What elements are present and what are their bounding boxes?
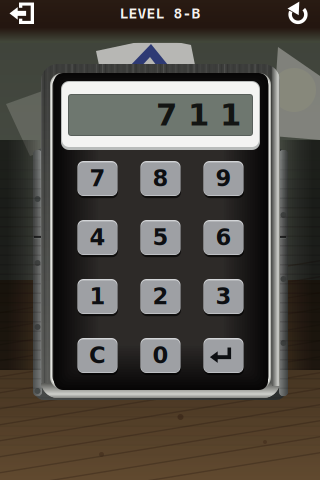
button[interactable]: 8 (140, 161, 180, 198)
button[interactable]: 9 (203, 161, 243, 198)
button[interactable]: 3 (203, 279, 243, 316)
button[interactable]: 5 (140, 220, 180, 257)
staticText: 2 (152, 283, 168, 310)
staticText: 6 (215, 224, 231, 251)
button[interactable] (203, 338, 243, 375)
staticText: 7 (89, 165, 105, 192)
staticText: 0 (152, 342, 168, 369)
staticText: 8 (152, 165, 168, 192)
staticText: LEVEL 8-B (119, 5, 200, 22)
button[interactable]: 2 (140, 279, 180, 316)
button[interactable]: C (77, 338, 117, 375)
staticText: 5 (152, 224, 168, 251)
staticText: C (89, 342, 106, 369)
button[interactable]: 7 (77, 161, 117, 198)
button[interactable]: 6 (203, 220, 243, 257)
button[interactable]: 0 (140, 338, 180, 375)
button[interactable]: 4 (77, 220, 117, 257)
staticText: 4 (89, 224, 105, 251)
staticText: 9 (215, 165, 231, 192)
button[interactable]: Restart level (276, 0, 320, 27)
staticText: 3 (215, 283, 231, 310)
staticText: 7 1 1 (156, 97, 241, 133)
staticText: 1 (89, 283, 105, 310)
button[interactable]: Exit level (0, 0, 44, 27)
button[interactable]: 1 (77, 279, 117, 316)
